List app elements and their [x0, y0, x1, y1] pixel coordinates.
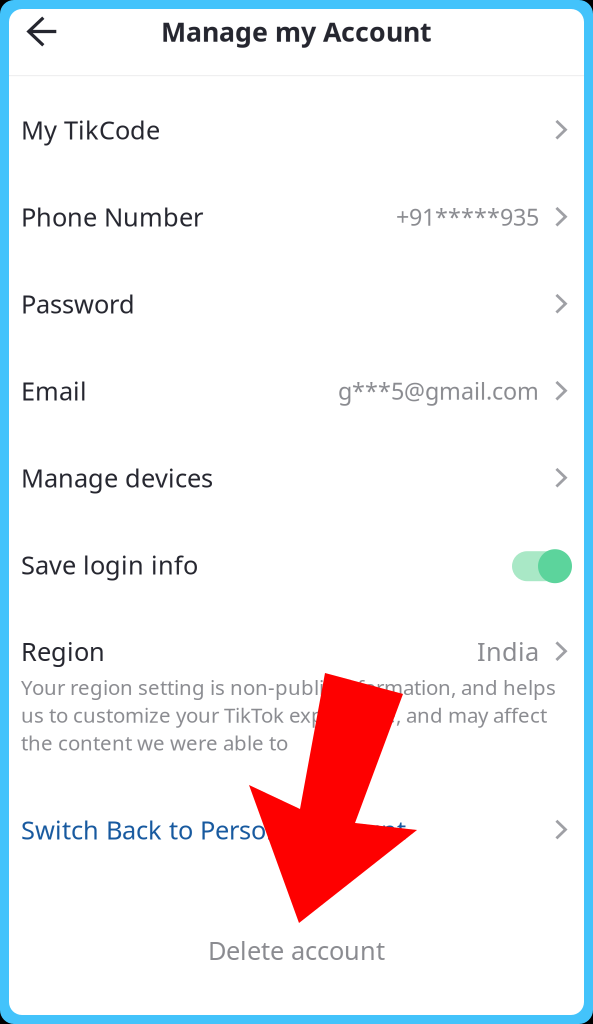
staticText: Region: [21, 634, 105, 668]
staticText: Email: [21, 374, 87, 407]
button[interactable]: Delete account: [188, 925, 405, 975]
button[interactable]: Back: [9, 6, 72, 57]
staticText: Phone Number: [21, 200, 203, 233]
staticText: Password: [21, 287, 135, 320]
staticText: +91*****935: [396, 201, 539, 233]
staticText: India: [477, 634, 539, 668]
staticText: Switch Back to Personal Account: [21, 813, 406, 846]
button[interactable]: Save login info: [512, 546, 572, 583]
button[interactable]: Phone Number: [9, 173, 584, 260]
button[interactable]: Manage devices: [9, 434, 584, 521]
button[interactable]: Region: [9, 629, 584, 673]
button[interactable]: My TikCode: [9, 86, 584, 173]
staticText: Your region setting is non-public inform…: [21, 673, 556, 756]
staticText: Manage my Account: [161, 13, 432, 50]
staticText: g***5@gmail.com: [338, 375, 539, 407]
button[interactable]: Password: [9, 260, 584, 347]
staticText: Manage devices: [21, 461, 213, 494]
staticText: My TikCode: [21, 113, 160, 146]
staticText: Save login info: [21, 548, 198, 581]
staticText: Delete account: [208, 933, 385, 967]
button[interactable]: Switch Back to Personal Account: [9, 794, 584, 864]
button[interactable]: Email: [9, 347, 584, 434]
